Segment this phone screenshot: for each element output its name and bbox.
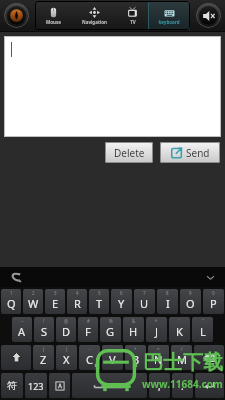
button[interactable]: 123 <box>25 373 47 398</box>
button[interactable]: ( <box>33 345 54 370</box>
staticText: / <box>181 346 183 352</box>
button[interactable]: Mute <box>196 3 221 28</box>
staticText: 8 <box>166 290 169 296</box>
button[interactable]: 5 <box>89 289 109 314</box>
staticText: ( <box>43 346 45 352</box>
button[interactable]: 1 <box>1 289 21 314</box>
button[interactable]: = <box>148 345 169 370</box>
button[interactable]: @ <box>56 317 76 342</box>
button[interactable]: Power <box>4 3 29 28</box>
staticText: E <box>52 296 59 311</box>
staticText: = <box>157 346 160 352</box>
staticText: % <box>109 318 113 324</box>
staticText: 2 <box>32 290 35 296</box>
staticText: Navigation <box>82 19 107 25</box>
staticText: @ <box>64 318 69 324</box>
button[interactable]: . <box>172 373 193 398</box>
button[interactable]: _ <box>102 345 123 370</box>
button[interactable]: Shift <box>1 345 31 370</box>
button[interactable]: " <box>192 317 213 342</box>
staticText: " <box>202 318 204 324</box>
staticText: 3 <box>54 290 57 296</box>
button[interactable]: 符 <box>1 373 23 398</box>
button[interactable]: + <box>125 345 146 370</box>
staticText: H <box>129 324 138 339</box>
staticText: * <box>155 318 158 324</box>
staticText: X <box>63 352 70 367</box>
button[interactable]: Hide keyboard <box>205 272 216 283</box>
staticText: S <box>41 324 48 339</box>
button[interactable]: 4 <box>67 289 87 314</box>
staticText: 7 <box>143 290 146 296</box>
button[interactable]: Input method <box>9 271 22 284</box>
button[interactable]: 6 <box>111 289 132 314</box>
staticText: 符 <box>7 379 17 392</box>
button[interactable]: 8 <box>157 289 178 314</box>
staticText: W <box>28 296 39 311</box>
staticText: V <box>109 352 116 367</box>
button[interactable]: % <box>100 317 121 342</box>
staticText: keyboard <box>158 19 180 25</box>
staticText: www.11684.com <box>142 377 223 391</box>
staticText: N <box>154 352 163 367</box>
button[interactable]: & <box>123 317 144 342</box>
staticText: C <box>86 352 93 367</box>
button[interactable]: Navigation <box>71 1 117 30</box>
staticText: Delete <box>114 146 145 160</box>
button[interactable]: ' <box>169 317 190 342</box>
button[interactable]: Mouse <box>35 1 71 30</box>
staticText: 5 <box>98 290 101 296</box>
button[interactable]: keyboard <box>148 1 190 30</box>
staticText: 6 <box>120 290 123 296</box>
button[interactable]: ~ <box>12 317 32 342</box>
staticText: & <box>132 318 136 324</box>
staticText: D <box>62 324 71 339</box>
button[interactable]: 0 <box>203 289 224 314</box>
staticText: O <box>186 296 195 311</box>
button[interactable]: Backspace <box>194 345 224 370</box>
staticText: , <box>158 379 161 393</box>
button[interactable]: / <box>171 345 192 370</box>
staticText: A <box>18 324 26 339</box>
button[interactable]: Send <box>160 142 220 163</box>
staticText: 巴士下载 <box>143 350 223 375</box>
button[interactable]: 7 <box>134 289 155 314</box>
button[interactable]: - <box>79 345 100 370</box>
button[interactable]: 9 <box>180 289 201 314</box>
button[interactable]: 2 <box>23 289 43 314</box>
staticText: ~ <box>21 318 24 324</box>
staticText: 123 <box>28 380 44 392</box>
staticText: TV <box>130 19 136 25</box>
staticText: K <box>176 324 183 339</box>
staticText: M <box>177 352 187 367</box>
button[interactable]: ) <box>56 345 77 370</box>
staticText: J <box>155 324 159 339</box>
staticText: 9 <box>189 290 192 296</box>
staticText: 0 <box>212 290 215 296</box>
button[interactable]: # <box>78 317 98 342</box>
staticText: - <box>89 346 91 352</box>
staticText: I <box>166 296 170 311</box>
staticText: ! <box>43 318 45 324</box>
staticText: Q <box>7 296 16 311</box>
staticText: Z <box>40 352 47 367</box>
staticText: F <box>85 324 91 339</box>
staticText: Send <box>186 146 210 160</box>
button[interactable]: Language <box>49 373 70 398</box>
button[interactable]: 3 <box>45 289 65 314</box>
button[interactable]: Enter <box>195 373 224 398</box>
button[interactable]: * <box>146 317 167 342</box>
staticText: R <box>74 296 81 311</box>
staticText: 4 <box>76 290 79 296</box>
staticText: T <box>96 296 103 311</box>
staticText: ) <box>66 346 68 352</box>
button[interactable]: ! <box>34 317 54 342</box>
button[interactable]: , <box>149 373 170 398</box>
staticText: _ <box>112 346 114 352</box>
button[interactable]: Space <box>72 373 147 398</box>
button[interactable]: Delete <box>105 142 153 163</box>
button[interactable]: TV <box>117 1 148 30</box>
button[interactable] <box>4 36 221 137</box>
staticText: B <box>132 352 140 367</box>
staticText: 1 <box>10 290 13 296</box>
